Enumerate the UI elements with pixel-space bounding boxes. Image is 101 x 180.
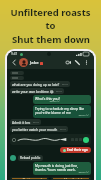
button[interactable]: Reload public	[10, 155, 43, 161]
button[interactable]: More options	[82, 58, 91, 67]
staticText: What's this you?	[35, 96, 60, 100]
staticText: 09:16	[62, 83, 68, 86]
staticText: 09:16	[60, 128, 66, 131]
button[interactable]: write your own bedtime 😂	[10, 88, 64, 94]
button[interactable]: Trying to schedule my sleep like you're …	[33, 105, 91, 118]
button[interactable]: 🔥 More thanks!	[51, 177, 91, 180]
button[interactable]: Admit it bro	[10, 119, 41, 125]
button[interactable]	[19, 58, 28, 67]
button[interactable]: Send	[83, 137, 89, 143]
button[interactable]	[10, 76, 24, 80]
staticText: 09:18 ✓✓	[78, 114, 89, 117]
button[interactable]: What's this you?	[33, 95, 91, 104]
button[interactable]: Video call	[64, 58, 73, 67]
staticText: Trying to schedule my sleep like you're …	[35, 106, 89, 114]
button[interactable]: My mouth is doing just fine, thanks. You…	[33, 162, 91, 175]
button[interactable]: Call	[73, 58, 82, 67]
button[interactable]	[10, 71, 24, 75]
staticText: Shut them down	[12, 33, 90, 46]
staticText: Unfiltered roasts to	[6, 6, 95, 32]
button[interactable]: Back	[10, 58, 19, 67]
staticText: End their ego	[67, 148, 88, 152]
button[interactable]: what are you doing up so late?	[10, 81, 70, 87]
staticText: what are you doing up so late?	[12, 82, 60, 86]
staticText: Admit it bro	[12, 120, 31, 124]
staticText: Reload public	[20, 156, 41, 160]
staticText: you better watch your mouth	[12, 127, 58, 131]
staticText: 09:16	[33, 121, 39, 124]
button[interactable]: Jake	[30, 60, 43, 66]
button[interactable]: End their ego	[60, 147, 91, 153]
staticText: 🔥 That's savage!	[18, 178, 42, 179]
staticText: 09:16	[56, 90, 62, 93]
staticText: 09:18 ✓✓	[49, 100, 60, 103]
staticText: My mouth is doing just fine, thanks. You…	[35, 163, 89, 171]
button[interactable]: 🔥 That's savage!	[10, 177, 49, 180]
button[interactable]: you better watch your mouth	[10, 126, 68, 132]
staticText: 09:18 ✓✓	[78, 171, 89, 174]
button[interactable]: Send	[10, 134, 91, 145]
staticText: Jake	[30, 60, 39, 66]
staticText: 9:41	[11, 52, 18, 56]
staticText: 🔥 More thanks!	[60, 178, 82, 179]
staticText: write your own bedtime 😂	[12, 89, 54, 93]
